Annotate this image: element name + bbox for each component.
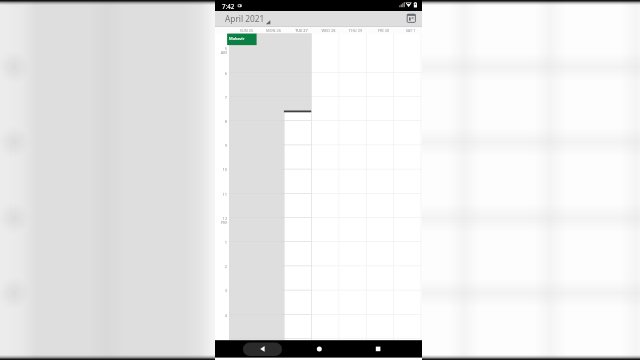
button[interactable]: WED 28 <box>315 28 342 34</box>
staticText: Mahavir <box>229 36 245 41</box>
staticText: 6 <box>216 71 227 76</box>
staticText: FRI 30 <box>370 28 397 33</box>
staticText: 5 AM <box>216 46 227 55</box>
button[interactable]: SAT 1 <box>397 28 424 34</box>
staticText: 9 <box>216 143 227 148</box>
button[interactable]: MON 26 <box>260 28 287 34</box>
staticText: 7:42 <box>222 2 235 10</box>
staticText: 4 <box>216 313 227 318</box>
button[interactable]: THU 29 <box>342 28 369 34</box>
staticText: 2 <box>216 264 227 269</box>
staticText: MON 26 <box>260 28 287 33</box>
staticText: THU 29 <box>342 28 369 33</box>
button[interactable]: FRI 30 <box>370 28 397 34</box>
staticText: SAT 1 <box>397 28 424 33</box>
staticText: 8 <box>216 119 227 124</box>
staticText: WED 28 <box>315 28 342 33</box>
button[interactable]: SUN 25 <box>233 28 260 34</box>
staticText: TUE 27 <box>288 28 315 33</box>
staticText: 12 PM <box>216 216 227 225</box>
staticText: SUN 25 <box>233 28 260 33</box>
staticText: 7 <box>216 95 227 100</box>
button[interactable]: April 2021 <box>225 13 265 24</box>
staticText: 11 <box>216 192 227 197</box>
staticText: 3 <box>216 288 227 293</box>
staticText: 1 <box>216 240 227 245</box>
staticText: April 2021 <box>225 13 265 24</box>
staticText: 10 <box>216 167 227 172</box>
button[interactable]: TUE 27 <box>288 28 315 34</box>
button[interactable]: Mahavir <box>229 36 245 41</box>
